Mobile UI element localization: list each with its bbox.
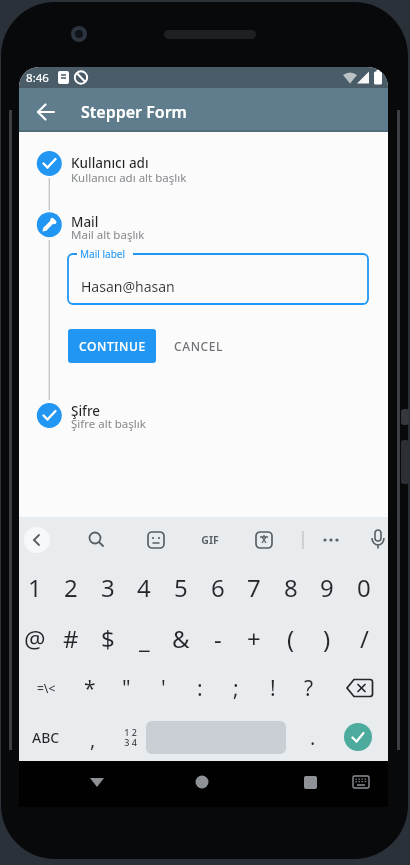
staticText: Kullanıcı adı alt başlık [71, 170, 187, 185]
staticText: 7 [247, 571, 261, 604]
staticText: : [197, 674, 203, 703]
staticText: 8:46 [26, 70, 49, 86]
staticText: + [247, 622, 261, 655]
staticText: 8 [284, 571, 298, 604]
staticText: 5 [174, 571, 188, 604]
staticText: # [63, 622, 79, 655]
button[interactable]: 4 [126, 567, 162, 607]
button[interactable] [24, 527, 50, 553]
button[interactable]: 8 [273, 567, 309, 607]
staticText: =\< [37, 680, 56, 696]
staticText: 2 [64, 571, 78, 604]
staticText: GIF [201, 533, 219, 547]
button[interactable]: . [295, 717, 331, 757]
staticText: 0 [357, 571, 371, 604]
staticText: 3 [101, 571, 115, 604]
staticText: 4 [137, 571, 151, 604]
button[interactable] [294, 766, 326, 798]
button[interactable]: 0 [346, 567, 382, 607]
staticText: 9 [320, 571, 334, 604]
staticText: . [310, 724, 316, 751]
staticText: / [360, 622, 369, 655]
button[interactable]: ; [218, 668, 254, 708]
staticText: ' [161, 674, 166, 703]
button[interactable] [186, 766, 218, 798]
button[interactable] [348, 769, 374, 795]
button[interactable]: # [53, 618, 89, 658]
staticText: " [122, 674, 131, 703]
button[interactable]: " [108, 668, 144, 708]
staticText: ) [323, 622, 331, 655]
button[interactable]: 7 [236, 567, 272, 607]
staticText: Şifre alt başlık [71, 416, 146, 431]
button[interactable]: ? [291, 668, 327, 708]
button[interactable] [81, 766, 113, 798]
button[interactable]: 1 [19, 567, 53, 607]
staticText: Mail [71, 213, 99, 231]
button[interactable]: $ [90, 618, 126, 658]
button[interactable]: , [75, 719, 111, 759]
staticText: 1 [28, 571, 42, 604]
button[interactable]: ABC [28, 717, 64, 757]
button[interactable]: CONTINUE [68, 329, 156, 363]
button[interactable]: 2 [53, 567, 89, 607]
button[interactable]: 6 [200, 567, 236, 607]
staticText: - [214, 622, 222, 655]
button[interactable]: 5 [163, 567, 199, 607]
staticText: ? [304, 674, 314, 703]
staticText: 1 2 3 4 [124, 726, 137, 748]
staticText: @ [24, 622, 46, 655]
staticText: ( [287, 622, 295, 655]
button[interactable]: & [163, 618, 199, 658]
staticText: _ [139, 622, 150, 655]
button[interactable]: ( [273, 618, 309, 658]
staticText: CANCEL [174, 338, 224, 354]
button[interactable]: 9 [309, 567, 345, 607]
button[interactable]: * [72, 668, 108, 708]
staticText: ABC [32, 728, 60, 747]
staticText: Mail alt başlık [71, 227, 145, 242]
button[interactable]: @ [19, 618, 53, 658]
button[interactable] [344, 723, 372, 751]
staticText: Stepper Form [81, 101, 187, 123]
staticText: ; [233, 674, 239, 703]
button[interactable]: + [236, 618, 272, 658]
button[interactable] [31, 97, 61, 127]
button[interactable]: _ [126, 618, 162, 658]
staticText: & [172, 622, 190, 655]
staticText: Mail label [80, 247, 125, 260]
staticText: 6 [211, 571, 225, 604]
staticText: $ [101, 622, 115, 655]
staticText: ! [270, 674, 276, 703]
button[interactable]: CANCEL [164, 329, 234, 363]
button[interactable]: ! [255, 668, 291, 708]
button[interactable]: 3 [90, 567, 126, 607]
button[interactable]: : [182, 668, 218, 708]
button[interactable]: / [346, 618, 382, 658]
staticText: CONTINUE [79, 338, 146, 354]
staticText: , [90, 726, 96, 753]
button[interactable]: ) [309, 618, 345, 658]
button[interactable]: - [200, 618, 236, 658]
staticText: Hasan@hasan [81, 277, 175, 296]
button[interactable]: ' [145, 668, 181, 708]
staticText: * [84, 674, 96, 703]
staticText: Kullanıcı adı [71, 154, 149, 172]
staticText: Şifre [71, 402, 101, 420]
button[interactable]: =\< [28, 668, 64, 708]
